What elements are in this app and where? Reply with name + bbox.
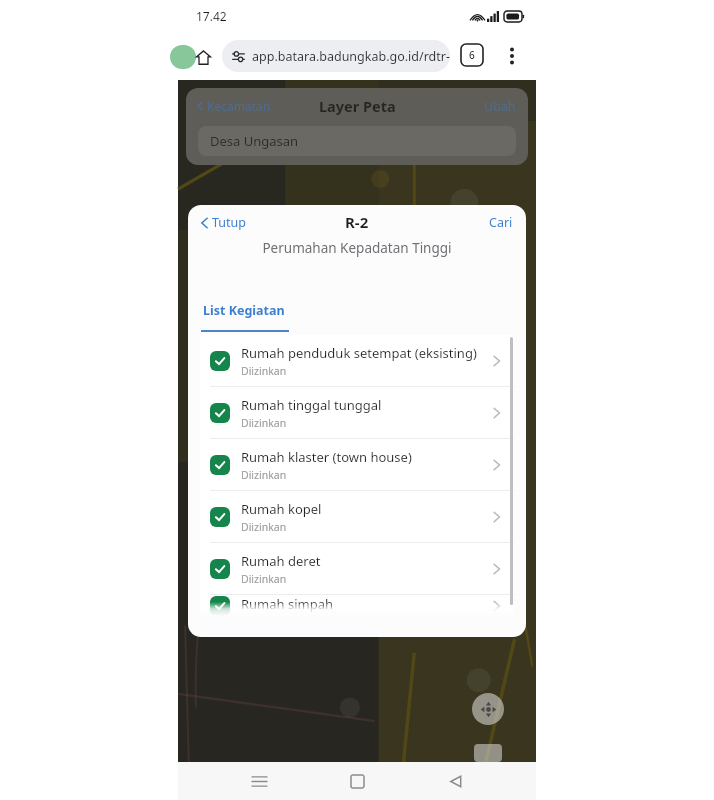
- button[interactable]: Rumah tinggal tunggal: [200, 387, 514, 438]
- staticText: app.batara.badungkab.go.id/rdtr-r: [252, 48, 450, 65]
- button[interactable]: Rumah simpah: [200, 595, 514, 616]
- button[interactable]: Tabs, 6 open: [461, 44, 483, 66]
- button[interactable]: app.batara.badungkab.go.id/rdtr-r: [222, 40, 450, 72]
- staticText: Rumah klaster (town house): [241, 448, 412, 466]
- button[interactable]: List Kegiatan: [201, 300, 289, 332]
- button[interactable]: Map layers: [474, 744, 502, 762]
- button[interactable]: Desa Ungasan: [198, 126, 516, 156]
- button[interactable]: Rumah kopel: [200, 491, 514, 542]
- staticText: Diizinkan: [241, 572, 287, 586]
- button[interactable]: Rumah klaster (town house): [200, 439, 514, 490]
- staticText: Layer Peta: [319, 96, 396, 116]
- staticText: 17.42: [196, 8, 227, 24]
- button[interactable]: Pan map: [472, 693, 504, 725]
- staticText: R-2: [345, 212, 369, 232]
- staticText: Rumah deret: [241, 552, 321, 570]
- staticText: Perumahan Kepadatan Tinggi: [262, 239, 452, 257]
- staticText: List Kegiatan: [203, 302, 285, 319]
- staticText: Tutup: [212, 214, 246, 231]
- staticText: Rumah simpah: [241, 595, 334, 613]
- staticText: Kecamatan: [207, 98, 271, 114]
- button[interactable]: More options: [500, 44, 524, 68]
- button[interactable]: Home: [342, 766, 372, 796]
- staticText: Rumah penduduk setempat (eksisting): [241, 344, 477, 362]
- staticText: Diizinkan: [241, 468, 287, 482]
- staticText: Diizinkan: [241, 520, 287, 534]
- button[interactable]: Ubah: [484, 98, 516, 115]
- staticText: Diizinkan: [241, 364, 287, 378]
- button[interactable]: Rumah penduduk setempat (eksisting): [200, 335, 514, 386]
- button[interactable]: Back: [440, 766, 470, 796]
- button[interactable]: Rumah deret: [200, 543, 514, 594]
- button[interactable]: Kecamatan: [197, 98, 271, 114]
- staticText: Desa Ungasan: [210, 132, 299, 150]
- button[interactable]: Recent apps: [244, 766, 274, 796]
- button[interactable]: Cari: [489, 214, 513, 231]
- staticText: Rumah kopel: [241, 500, 322, 518]
- staticText: 6: [469, 48, 475, 62]
- button[interactable]: Tutup: [201, 214, 246, 231]
- button[interactable]: Home: [190, 44, 216, 70]
- staticText: Diizinkan: [241, 416, 287, 430]
- staticText: Rumah tinggal tunggal: [241, 396, 382, 414]
